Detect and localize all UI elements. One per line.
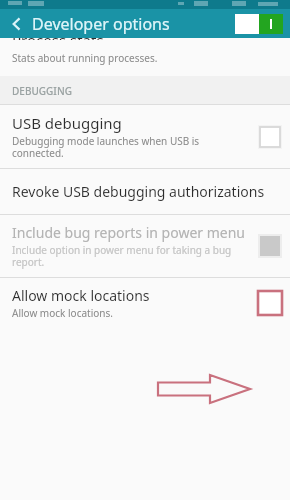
- staticText: DEBUGGING: [12, 84, 72, 98]
- button[interactable]: Include bug reports in power menu: [0, 215, 290, 277]
- button[interactable]: Revoke USB debugging authorizations: [0, 169, 290, 214]
- button[interactable]: Developer options on/off: [235, 14, 283, 34]
- staticText: USB debugging: [12, 113, 122, 133]
- staticText: Allow mock locations.: [12, 306, 113, 320]
- staticText: Stats about running processes.: [12, 51, 158, 65]
- staticText: Revoke USB debugging authorizations: [12, 182, 265, 201]
- staticText: Process stats: [12, 38, 104, 40]
- button[interactable]: Allow mock locations: [0, 278, 290, 328]
- staticText: Include bug reports in power menu: [12, 223, 246, 242]
- staticText: Debugging mode launches when USB is conn…: [12, 134, 200, 160]
- staticText: Developer options: [32, 13, 170, 35]
- button[interactable]: Back: [7, 14, 27, 34]
- button[interactable]: USB debugging: [0, 105, 290, 168]
- staticText: Allow mock locations: [12, 286, 150, 305]
- staticText: Include option in power menu for taking …: [12, 243, 232, 269]
